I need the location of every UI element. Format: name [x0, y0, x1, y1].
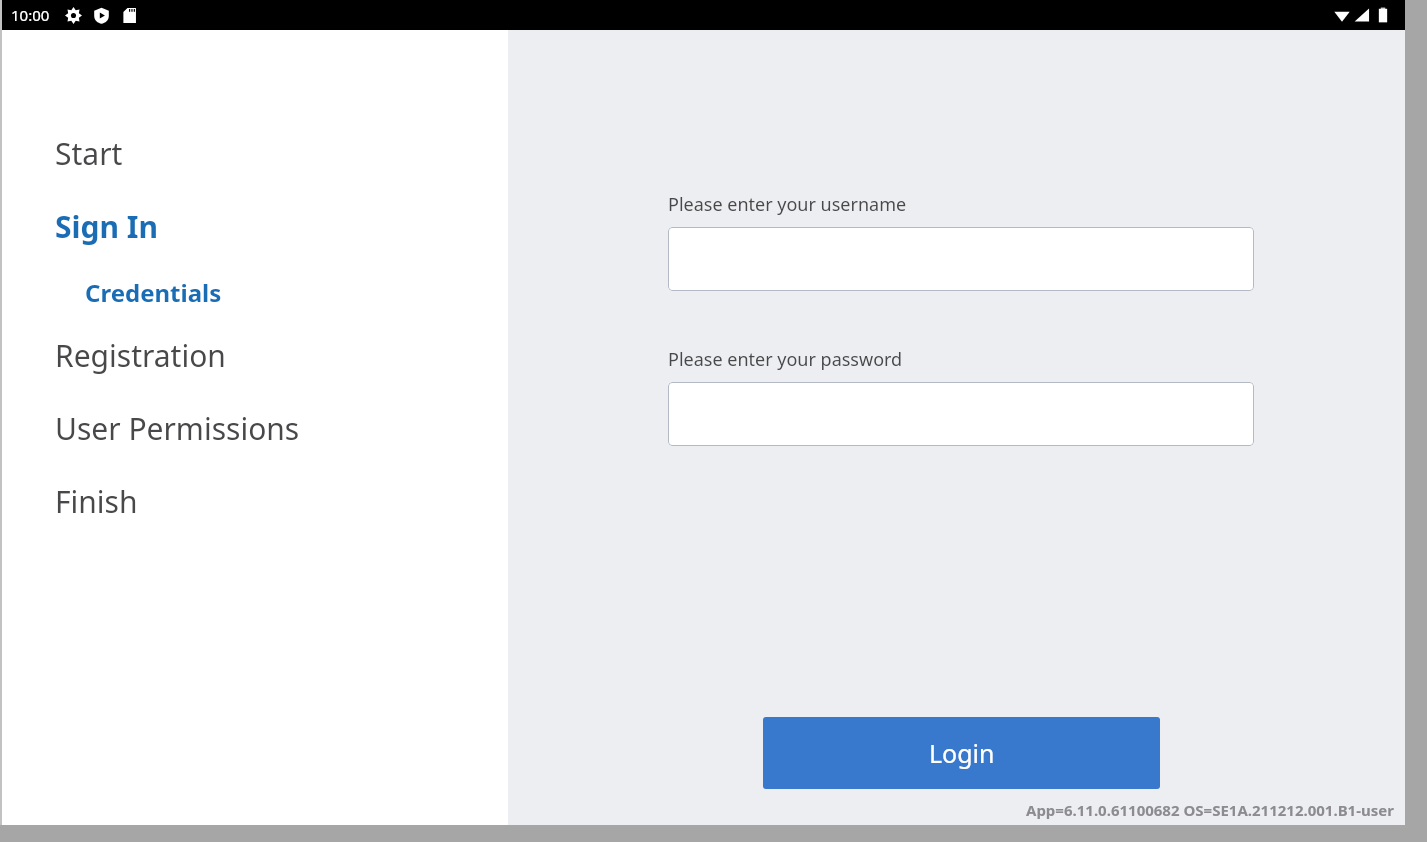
- staticText: Please enter your password: [668, 347, 903, 372]
- button[interactable]: [668, 382, 1254, 446]
- button[interactable]: User Permissions: [0, 407, 508, 450]
- button[interactable]: Finish: [0, 480, 508, 523]
- staticText: Start: [55, 133, 123, 174]
- staticText: App=6.11.0.61100682 OS=SE1A.211212.001.B…: [1026, 800, 1394, 820]
- staticText: User Permissions: [55, 408, 300, 449]
- staticText: Please enter your username: [668, 192, 907, 217]
- staticText: Login: [929, 736, 995, 770]
- staticText: Credentials: [85, 276, 222, 309]
- staticText: Registration: [55, 335, 226, 376]
- other: SD card: [121, 7, 138, 24]
- button[interactable]: Start: [0, 132, 508, 175]
- other: Wi-Fi: [1334, 7, 1350, 23]
- other: Settings: [65, 7, 82, 24]
- staticText: 10:00: [11, 5, 50, 25]
- button[interactable]: Credentials: [0, 275, 508, 310]
- staticText: Finish: [55, 481, 138, 522]
- button[interactable]: [668, 227, 1254, 291]
- button[interactable]: Sign In: [0, 205, 508, 248]
- button[interactable]: Login: [763, 717, 1160, 789]
- other: Protected: [93, 7, 110, 24]
- other: Mobile signal: [1354, 7, 1370, 23]
- other: Battery: [1375, 7, 1391, 23]
- staticText: Sign In: [55, 206, 158, 247]
- button[interactable]: Registration: [0, 334, 508, 377]
